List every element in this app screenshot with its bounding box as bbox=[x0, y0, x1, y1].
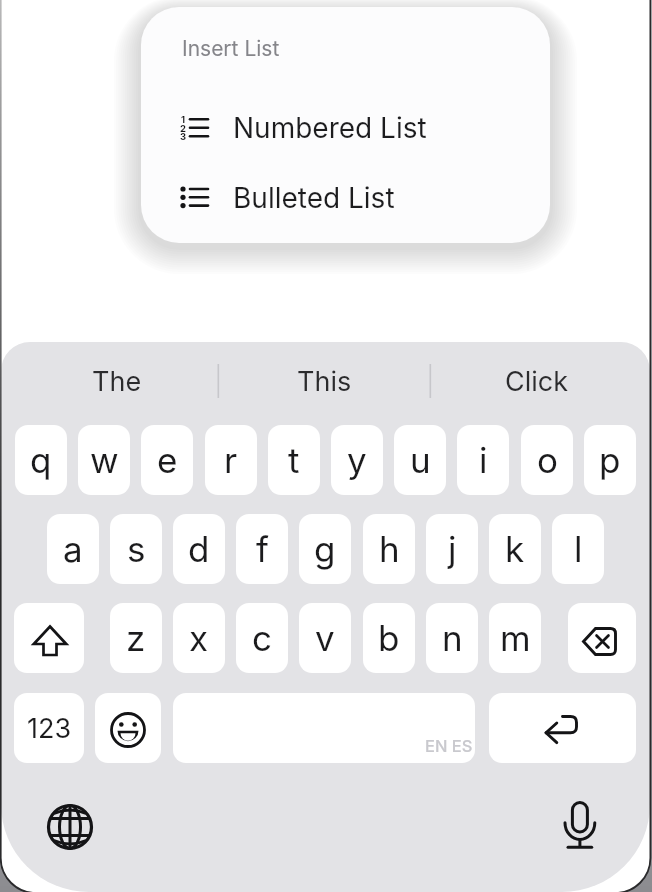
button[interactable]: u bbox=[394, 425, 446, 495]
staticText: q bbox=[30, 439, 52, 481]
button[interactable]: o bbox=[521, 425, 573, 495]
button[interactable]: d bbox=[173, 514, 225, 584]
button[interactable]: This bbox=[232, 356, 417, 406]
staticText: a bbox=[63, 528, 83, 570]
button[interactable]: h bbox=[363, 514, 415, 584]
staticText: k bbox=[505, 528, 525, 570]
button[interactable] bbox=[14, 603, 84, 673]
staticText: l bbox=[574, 528, 583, 570]
button[interactable]: c bbox=[236, 603, 288, 673]
staticText: d bbox=[188, 528, 210, 570]
staticText: 2 bbox=[180, 123, 186, 134]
staticText: Insert List bbox=[182, 36, 280, 61]
button[interactable]: b bbox=[363, 603, 415, 673]
staticText: r bbox=[224, 439, 238, 481]
staticText: 3 bbox=[180, 131, 187, 142]
staticText: e bbox=[157, 439, 178, 481]
staticText: Bulleted List bbox=[233, 181, 395, 215]
button[interactable]: n bbox=[426, 603, 478, 673]
staticText: This bbox=[297, 365, 352, 398]
button[interactable]: r bbox=[205, 425, 257, 495]
button[interactable]: w bbox=[78, 425, 130, 495]
staticText: o bbox=[537, 439, 558, 481]
button[interactable]: The bbox=[24, 356, 209, 406]
button[interactable]: x bbox=[173, 603, 225, 673]
button[interactable] bbox=[489, 693, 636, 763]
staticText: The bbox=[92, 365, 142, 398]
button[interactable]: v bbox=[299, 603, 351, 673]
button[interactable] bbox=[44, 801, 96, 853]
staticText: h bbox=[379, 528, 400, 570]
button[interactable]: e bbox=[141, 425, 193, 495]
staticText: n bbox=[442, 617, 463, 659]
staticText: u bbox=[410, 439, 431, 481]
button[interactable]: g bbox=[299, 514, 351, 584]
staticText: EN ES bbox=[425, 736, 473, 756]
button[interactable]: l bbox=[552, 514, 604, 584]
staticText: 1 bbox=[181, 114, 186, 125]
staticText: p bbox=[599, 439, 621, 481]
button[interactable]: Click bbox=[444, 356, 629, 406]
staticText: v bbox=[315, 617, 335, 659]
staticText: f bbox=[256, 528, 269, 570]
button[interactable]: p bbox=[584, 425, 636, 495]
button[interactable]: q bbox=[15, 425, 67, 495]
button[interactable] bbox=[160, 168, 532, 228]
button[interactable]: z bbox=[110, 603, 162, 673]
staticText: w bbox=[90, 439, 119, 481]
staticText: t bbox=[288, 439, 300, 481]
button[interactable] bbox=[568, 603, 636, 673]
button[interactable] bbox=[160, 98, 532, 158]
button[interactable] bbox=[95, 693, 161, 763]
staticText: s bbox=[127, 528, 146, 570]
button[interactable]: t bbox=[268, 425, 320, 495]
button[interactable]: m bbox=[489, 603, 541, 673]
staticText: c bbox=[252, 617, 272, 659]
button[interactable]: j bbox=[426, 514, 478, 584]
staticText: 123 bbox=[27, 712, 72, 745]
button[interactable]: k bbox=[489, 514, 541, 584]
staticText: b bbox=[378, 617, 400, 659]
button[interactable]: y bbox=[331, 425, 383, 495]
staticText: i bbox=[479, 439, 488, 481]
button[interactable] bbox=[554, 799, 606, 851]
staticText: y bbox=[347, 439, 367, 481]
staticText: m bbox=[500, 617, 531, 659]
staticText: g bbox=[314, 528, 336, 570]
button[interactable] bbox=[173, 693, 475, 763]
button[interactable]: s bbox=[110, 514, 162, 584]
staticText: x bbox=[189, 617, 209, 659]
staticText: j bbox=[448, 528, 457, 570]
button[interactable]: i bbox=[457, 425, 509, 495]
staticText: z bbox=[126, 617, 146, 659]
button[interactable]: 123 bbox=[14, 693, 84, 763]
staticText: Click bbox=[505, 365, 569, 398]
button[interactable]: f bbox=[236, 514, 288, 584]
staticText: Numbered List bbox=[233, 111, 427, 145]
button[interactable]: a bbox=[47, 514, 99, 584]
